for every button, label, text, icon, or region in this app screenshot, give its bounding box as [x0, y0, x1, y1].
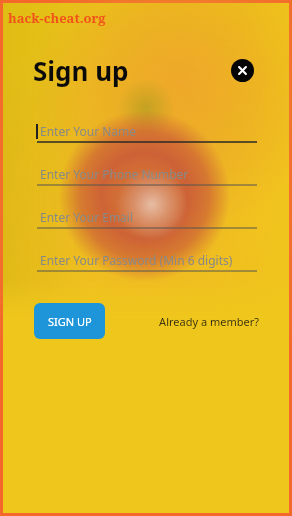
staticText: Enter Your Name [40, 123, 137, 139]
button[interactable]: Close [231, 59, 254, 82]
staticText: Enter Your Email [40, 209, 134, 225]
button[interactable]: SIGN UP [34, 303, 105, 339]
button[interactable]: Already a member? [157, 308, 261, 335]
staticText: Sign up [33, 53, 129, 88]
button[interactable]: Enter Your Phone Number [37, 164, 257, 187]
staticText: Already a member? [159, 314, 259, 329]
button[interactable]: Enter Your Password (Min 6 digits) [37, 250, 257, 273]
staticText: Enter Your Password (Min 6 digits) [40, 252, 233, 268]
staticText: SIGN UP [48, 314, 92, 329]
button[interactable]: Enter Your Email [37, 207, 257, 230]
staticText: hack-cheat.org [8, 9, 106, 27]
staticText: Enter Your Phone Number [40, 166, 189, 182]
button[interactable]: Enter Your Name [37, 121, 257, 144]
